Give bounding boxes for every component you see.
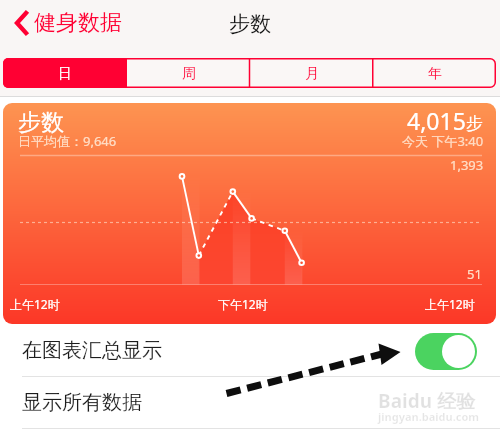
button[interactable]: Show in chart summary toggle	[415, 333, 477, 370]
staticText: 步数	[18, 108, 64, 137]
staticText: 显示所有数据	[22, 390, 142, 415]
staticText: 今天 下午3:40	[402, 132, 484, 150]
staticText: 月	[305, 65, 319, 83]
staticText: Baidu 经验	[378, 388, 475, 414]
staticText: 下午12时	[218, 296, 268, 312]
staticText: 日平均值：9,646	[18, 132, 117, 150]
button[interactable]: 健身数据	[8, 5, 128, 41]
staticText: 上午12时	[10, 296, 60, 312]
staticText: jingyan.baidu.com	[378, 409, 480, 424]
staticText: 1,393	[450, 156, 484, 174]
button[interactable]: 周	[127, 58, 250, 88]
staticText: 步	[466, 113, 483, 134]
button[interactable]: 显示所有数据	[0, 377, 500, 428]
staticText: 在图表汇总显示	[22, 338, 162, 363]
staticText: 健身数据	[34, 9, 122, 37]
staticText: 年	[428, 65, 442, 83]
staticText: 上午12时	[425, 296, 475, 312]
staticText: 4,015	[407, 105, 466, 136]
button[interactable]: 年	[373, 58, 496, 88]
staticText: 日	[58, 65, 72, 83]
staticText: 步数	[229, 11, 271, 37]
button[interactable]: 日	[3, 58, 127, 88]
staticText: 周	[182, 65, 196, 83]
button[interactable]: 月	[250, 58, 373, 88]
staticText: 51	[467, 265, 482, 283]
button[interactable]: 在图表汇总显示	[0, 325, 500, 376]
